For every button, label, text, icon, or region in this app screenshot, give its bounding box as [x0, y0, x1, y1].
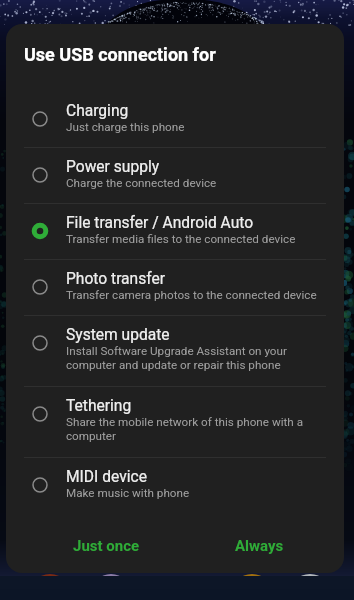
staticText: Make music with phone — [66, 486, 190, 500]
button[interactable]: Power supply — [6, 148, 344, 203]
button[interactable]: Always — [221, 527, 298, 565]
staticText: Charging — [66, 102, 129, 120]
staticText: System update — [66, 326, 170, 344]
staticText: Just once — [73, 537, 140, 555]
staticText: Install Software Upgrade Assistant on yo… — [66, 344, 331, 372]
button[interactable]: MIDI device — [6, 458, 344, 513]
staticText: Tethering — [66, 397, 132, 415]
button[interactable]: Tethering — [6, 387, 344, 457]
staticText: Share the mobile network of this phone w… — [66, 415, 331, 443]
staticText: MIDI device — [66, 468, 147, 486]
staticText: Transfer media files to the connected de… — [66, 232, 296, 246]
staticText: Just charge this phone — [66, 120, 185, 134]
staticText: Use USB connection for — [24, 44, 216, 65]
button[interactable]: Photo transfer — [6, 260, 344, 315]
staticText: Charge the connected device — [66, 176, 217, 190]
staticText: Always — [235, 537, 284, 555]
button[interactable]: Charging — [6, 92, 344, 147]
staticText: Photo transfer — [66, 270, 166, 288]
button[interactable]: System update — [6, 316, 344, 386]
button[interactable]: Just once — [59, 527, 154, 565]
staticText: Transfer camera photos to the connected … — [66, 288, 317, 302]
staticText: File transfer / Android Auto — [66, 214, 254, 232]
staticText: Power supply — [66, 158, 160, 176]
button[interactable]: File transfer / Android Auto — [6, 204, 344, 259]
